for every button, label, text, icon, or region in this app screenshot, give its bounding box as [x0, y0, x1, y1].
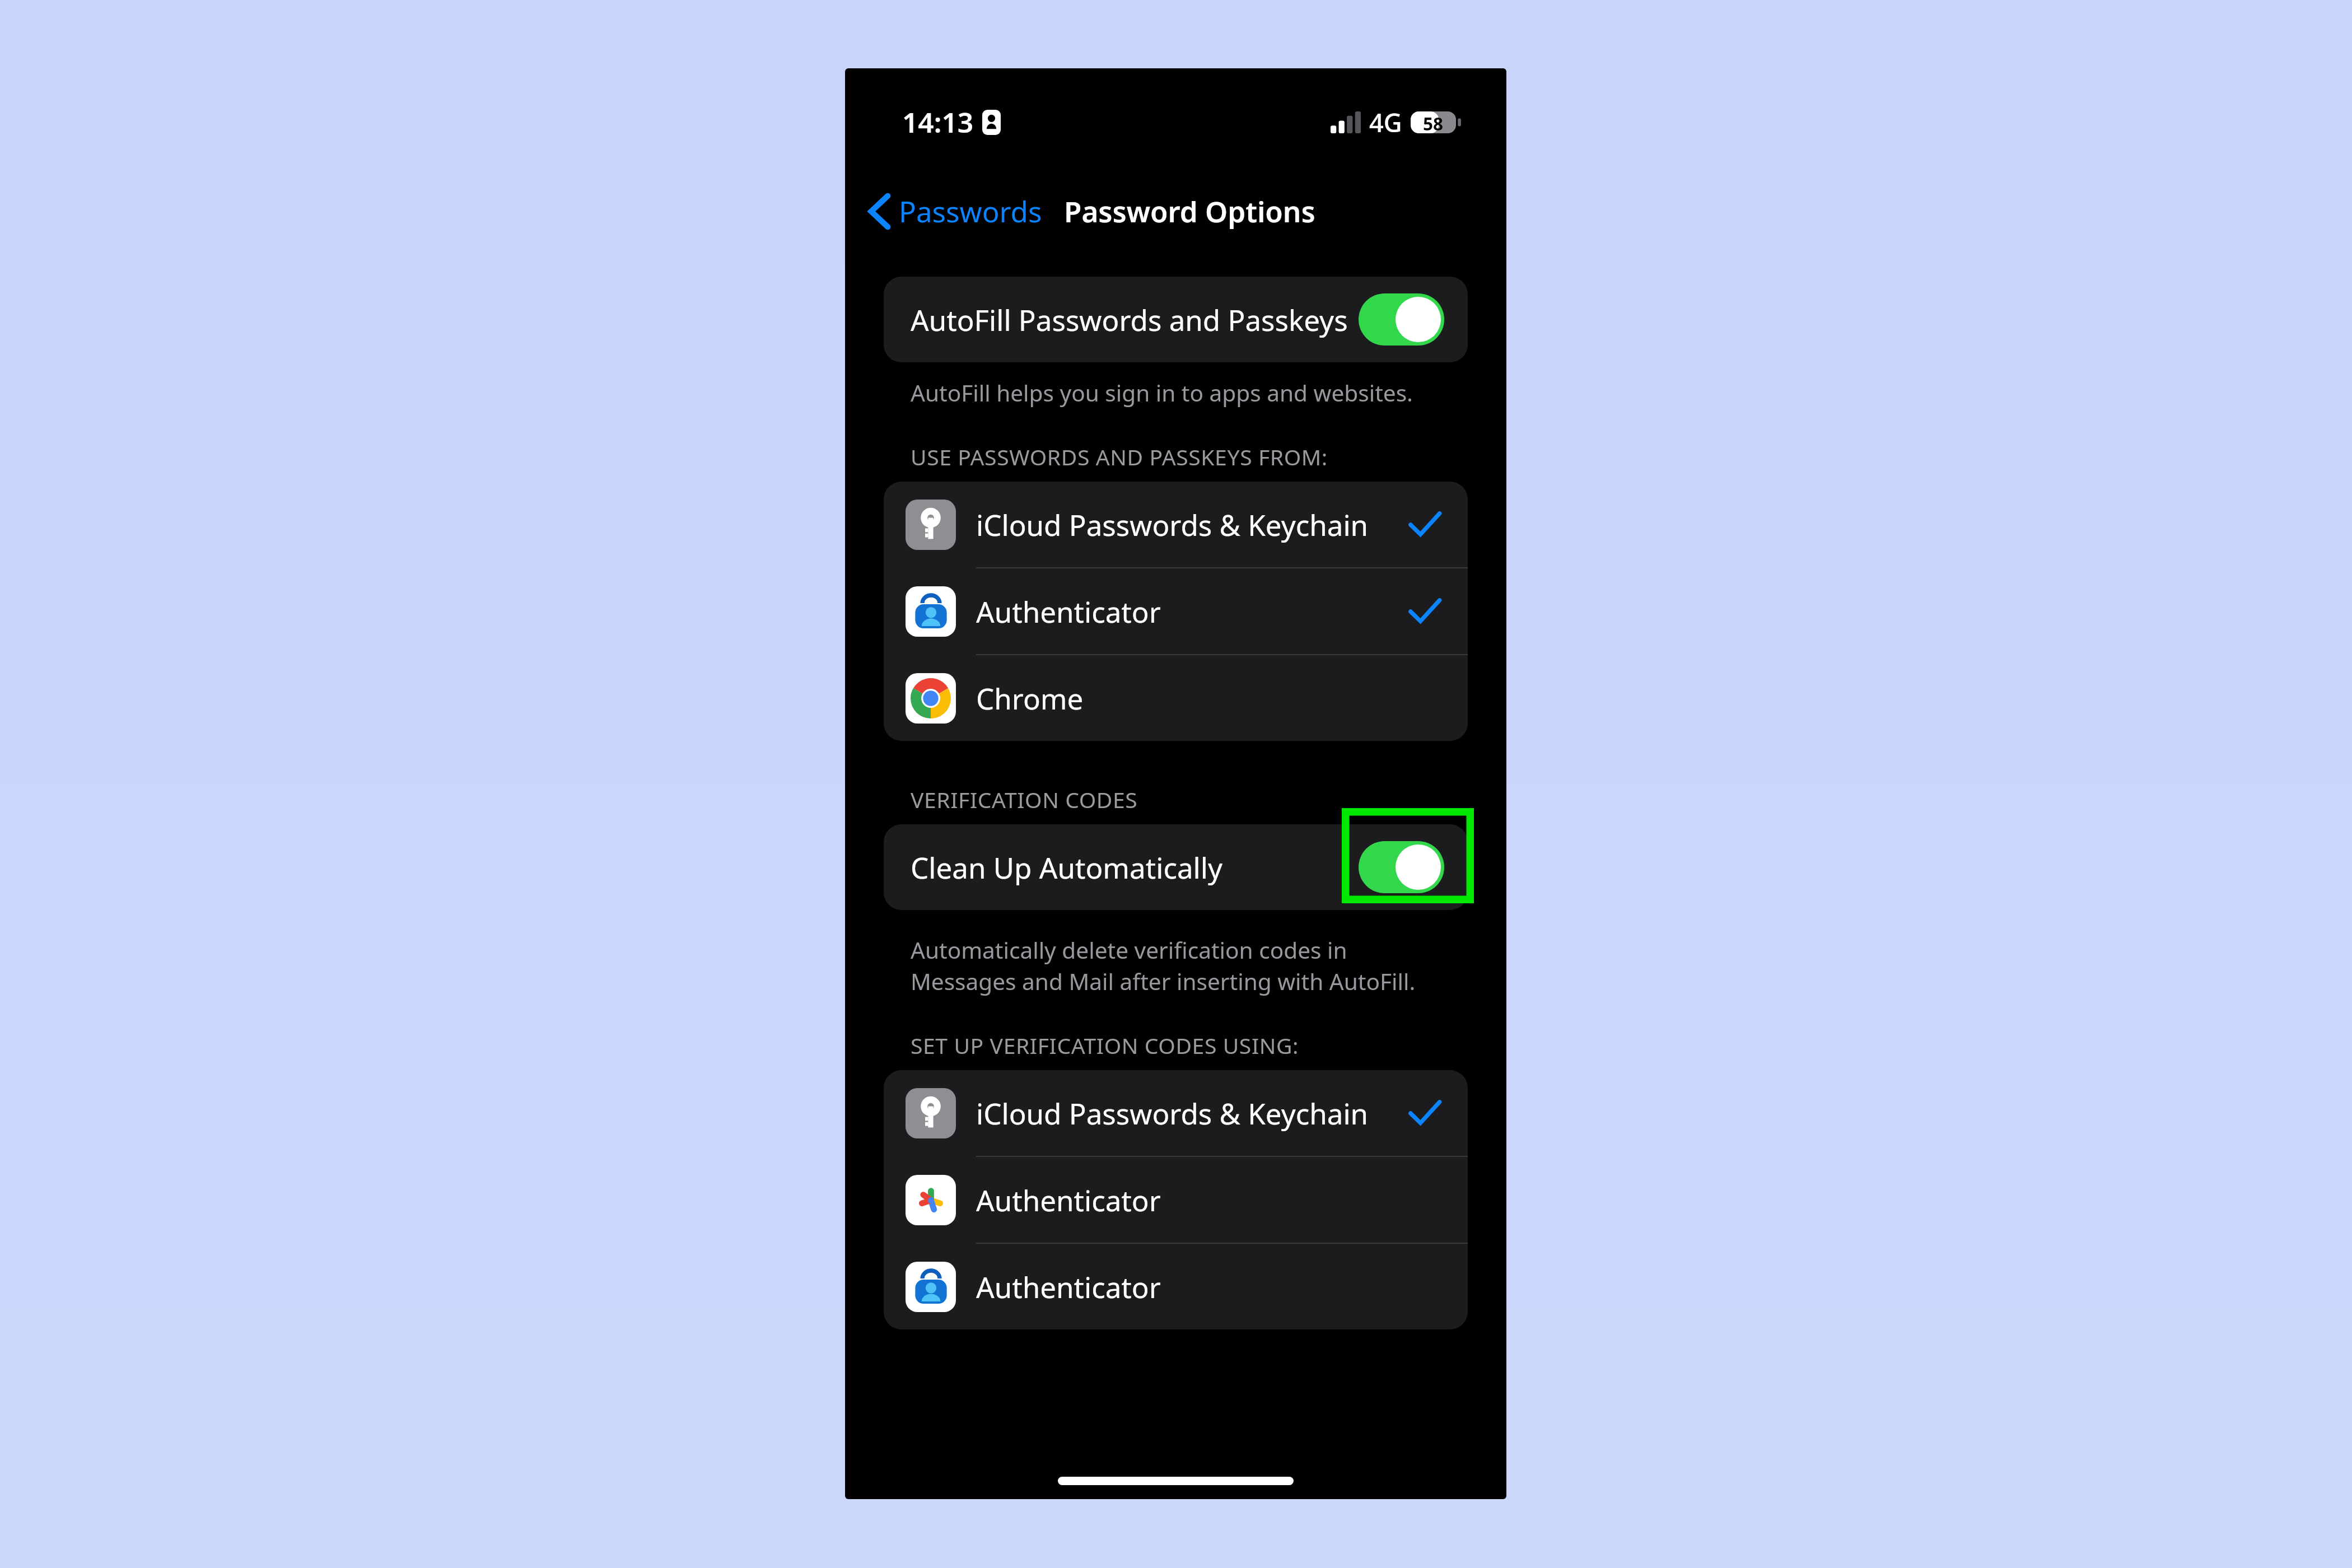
staticText: 4G	[1369, 105, 1402, 139]
button[interactable]: Clean Up Automatically	[884, 824, 1468, 910]
staticText: Password Options	[1064, 192, 1315, 231]
staticText: USE PASSWORDS AND PASSKEYS FROM:	[911, 442, 1328, 472]
staticText: SET UP VERIFICATION CODES USING:	[911, 1030, 1299, 1060]
button[interactable]: Toggle	[1359, 293, 1444, 346]
staticText: 14:13	[902, 103, 974, 141]
staticText: Authenticator	[976, 592, 1161, 631]
button[interactable]: Authenticator	[884, 568, 1468, 655]
button[interactable]: iCloud Passwords & Keychain	[884, 482, 1468, 568]
staticText: AutoFill Passwords and Passkeys	[911, 300, 1348, 339]
staticText: Authenticator	[976, 1180, 1161, 1220]
staticText: AutoFill helps you sign in to apps and w…	[911, 377, 1413, 408]
staticText: VERIFICATION CODES	[911, 785, 1138, 814]
button[interactable]: AutoFill Passwords and Passkeys	[884, 277, 1468, 362]
button[interactable]: Toggle	[1359, 841, 1444, 893]
staticText: iCloud Passwords & Keychain	[976, 1094, 1369, 1133]
staticText: Clean Up Automatically	[911, 848, 1222, 887]
button[interactable]: Authenticator	[884, 1244, 1468, 1329]
staticText: 58	[1423, 111, 1444, 133]
button[interactable]: iCloud Passwords & Keychain	[884, 1070, 1468, 1157]
staticText: Authenticator	[976, 1267, 1161, 1306]
staticText: iCloud Passwords & Keychain	[976, 505, 1369, 544]
button[interactable]: Passwords	[858, 186, 1052, 236]
staticText: Passwords	[899, 192, 1042, 231]
button[interactable]: Authenticator	[884, 1157, 1468, 1244]
staticText: Automatically delete verification codes …	[911, 935, 1456, 997]
staticText: Chrome	[976, 679, 1084, 718]
button[interactable]: Chrome	[884, 655, 1468, 741]
